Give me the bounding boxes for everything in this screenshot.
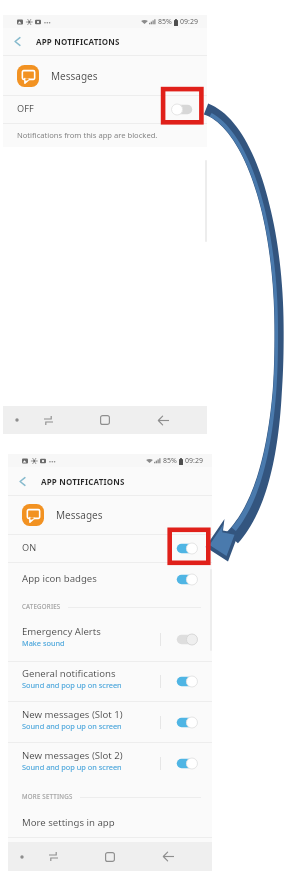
staticText: Emergency Alerts [22, 625, 101, 638]
staticText: Sound and pop up on screen [22, 680, 122, 690]
staticText: 85% [158, 17, 172, 27]
button[interactable]: Turn off [176, 542, 198, 555]
button[interactable]: Home [98, 842, 122, 871]
button[interactable]: OFF [3, 96, 207, 123]
button[interactable]: Turn off [176, 716, 198, 729]
button[interactable]: Emergency Alerts [8, 617, 212, 661]
button[interactable]: Menu [16, 842, 28, 871]
button[interactable]: Recent apps [36, 406, 60, 434]
button[interactable]: Home [93, 406, 117, 434]
staticText: APP NOTIFICATIONS [36, 36, 120, 47]
staticText: ON [22, 541, 37, 554]
button[interactable]: New messages (Slot 2) [8, 743, 212, 784]
staticText: MORE SETTINGS [22, 792, 73, 800]
button[interactable]: More settings in app [8, 809, 212, 837]
staticText: New messages (Slot 1) [22, 708, 123, 721]
button[interactable]: Recent apps [41, 842, 65, 871]
button[interactable]: New messages (Slot 1) [8, 702, 212, 742]
staticText: Make sound [22, 638, 65, 648]
staticText: 09:29 [180, 17, 198, 27]
staticText: Notifications from this app are blocked. [17, 130, 158, 140]
button[interactable]: Navigate up [8, 467, 36, 495]
staticText: New messages (Slot 2) [22, 749, 123, 762]
staticText: 85% [163, 456, 177, 466]
button[interactable]: Menu [11, 406, 23, 434]
staticText: More settings in app [22, 816, 115, 829]
button[interactable]: Turn on [171, 103, 193, 116]
button[interactable]: App icon badges [8, 563, 212, 596]
staticText: OFF [17, 102, 34, 115]
button[interactable]: Back [151, 406, 175, 434]
button[interactable]: General notifications [8, 662, 212, 701]
staticText: 09:29 [185, 456, 203, 466]
staticText: Sound and pop up on screen [22, 762, 122, 772]
button[interactable]: Turn off [176, 633, 198, 646]
button[interactable]: Turn off [176, 573, 198, 586]
staticText: CATEGORIES [22, 602, 61, 610]
button[interactable]: Turn off [176, 757, 198, 770]
button[interactable]: Messages [3, 56, 207, 95]
staticText: APP NOTIFICATIONS [41, 476, 125, 487]
staticText: Messages [56, 508, 103, 522]
button[interactable]: ON [8, 535, 212, 562]
button[interactable]: Back [156, 842, 180, 871]
button[interactable]: Navigate up [3, 28, 31, 55]
staticText: App icon badges [22, 572, 97, 585]
button[interactable]: Messages [8, 496, 212, 534]
staticText: Messages [51, 69, 98, 83]
staticText: General notifications [22, 667, 116, 680]
staticText: Sound and pop up on screen [22, 721, 122, 731]
button[interactable]: Turn off [176, 675, 198, 688]
